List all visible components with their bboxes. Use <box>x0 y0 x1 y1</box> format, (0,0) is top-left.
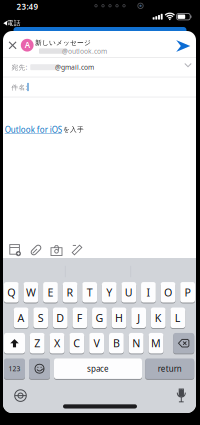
staticText: Z <box>34 336 40 350</box>
staticText: を入手 <box>63 125 84 134</box>
staticText: 宛先: <box>11 63 27 72</box>
button[interactable]: X <box>50 332 64 354</box>
staticText: V <box>94 336 100 350</box>
button[interactable] <box>176 389 187 403</box>
button[interactable] <box>173 332 194 354</box>
button[interactable]: J <box>131 307 146 329</box>
button[interactable]: Y <box>102 282 117 303</box>
staticText: Outlook for iOS <box>5 124 62 135</box>
staticText: I <box>146 285 150 299</box>
button[interactable] <box>9 244 21 256</box>
staticText: D <box>56 311 64 325</box>
staticText: K <box>155 311 162 325</box>
staticText: L <box>175 311 181 325</box>
staticText: @outlook.com <box>62 47 107 56</box>
button[interactable]: L <box>170 307 185 329</box>
button[interactable]: D <box>53 307 68 329</box>
button[interactable]: R <box>63 282 77 303</box>
staticText: A <box>18 311 25 325</box>
button[interactable]: V <box>89 332 104 354</box>
staticText: Q <box>7 285 15 299</box>
button[interactable] <box>4 332 25 354</box>
staticText: 123 <box>8 364 20 373</box>
button[interactable]: T <box>82 282 97 303</box>
staticText: @gmail.com <box>55 63 94 72</box>
button[interactable]: A <box>14 307 28 329</box>
button[interactable]: 宛先: <box>3 58 196 76</box>
button[interactable]: Z <box>30 332 45 354</box>
button[interactable]: H <box>112 307 126 329</box>
staticText: C <box>73 336 80 350</box>
button[interactable]: S <box>33 307 48 329</box>
button[interactable]: W <box>23 282 38 303</box>
button[interactable]: M <box>149 332 163 354</box>
button[interactable]: E <box>43 282 58 303</box>
button[interactable]: Q <box>4 282 19 303</box>
staticText: 件名: <box>11 83 27 92</box>
staticText: X <box>54 336 60 350</box>
staticText: 23:49 <box>16 1 38 12</box>
button[interactable]: F <box>72 307 87 329</box>
button[interactable]: G <box>92 307 107 329</box>
button[interactable]: 123 <box>4 358 25 379</box>
button[interactable]: P <box>180 282 195 303</box>
button[interactable]: K <box>151 307 166 329</box>
button[interactable]: I <box>141 282 156 303</box>
button[interactable]: C <box>69 332 84 354</box>
staticText: return <box>158 363 182 374</box>
staticText: S <box>38 311 44 325</box>
staticText: P <box>185 285 191 299</box>
staticText: E <box>47 285 53 299</box>
staticText: Y <box>106 285 112 299</box>
staticText: A <box>25 40 30 50</box>
button[interactable] <box>51 245 62 255</box>
staticText: O <box>164 285 172 299</box>
staticText: G <box>95 311 103 325</box>
staticText: B <box>113 336 120 350</box>
staticText: T <box>87 285 93 299</box>
button[interactable] <box>30 244 42 256</box>
button[interactable]: U <box>121 282 136 303</box>
staticText: H <box>115 311 123 325</box>
staticText: J <box>137 311 140 325</box>
button[interactable]: N <box>129 332 144 354</box>
staticText: space <box>87 363 109 374</box>
button[interactable]: O <box>161 282 175 303</box>
staticText: U <box>125 285 133 299</box>
button[interactable] <box>70 243 83 256</box>
button[interactable] <box>15 390 26 401</box>
button[interactable]: B <box>109 332 124 354</box>
button[interactable] <box>9 42 16 49</box>
button[interactable]: space <box>54 358 142 379</box>
button[interactable]: 件名: <box>3 78 196 96</box>
button[interactable] <box>29 358 50 379</box>
staticText: W <box>26 285 36 299</box>
button[interactable]: Outlook for iOS <box>5 124 62 135</box>
staticText: N <box>132 336 140 350</box>
staticText: 電話 <box>7 19 21 27</box>
staticText: R <box>67 285 74 299</box>
staticText: M <box>151 336 161 350</box>
staticText: F <box>77 311 83 325</box>
button[interactable] <box>176 40 190 52</box>
staticText: 新しいメッセージ <box>35 39 91 47</box>
button[interactable]: return <box>145 358 194 379</box>
